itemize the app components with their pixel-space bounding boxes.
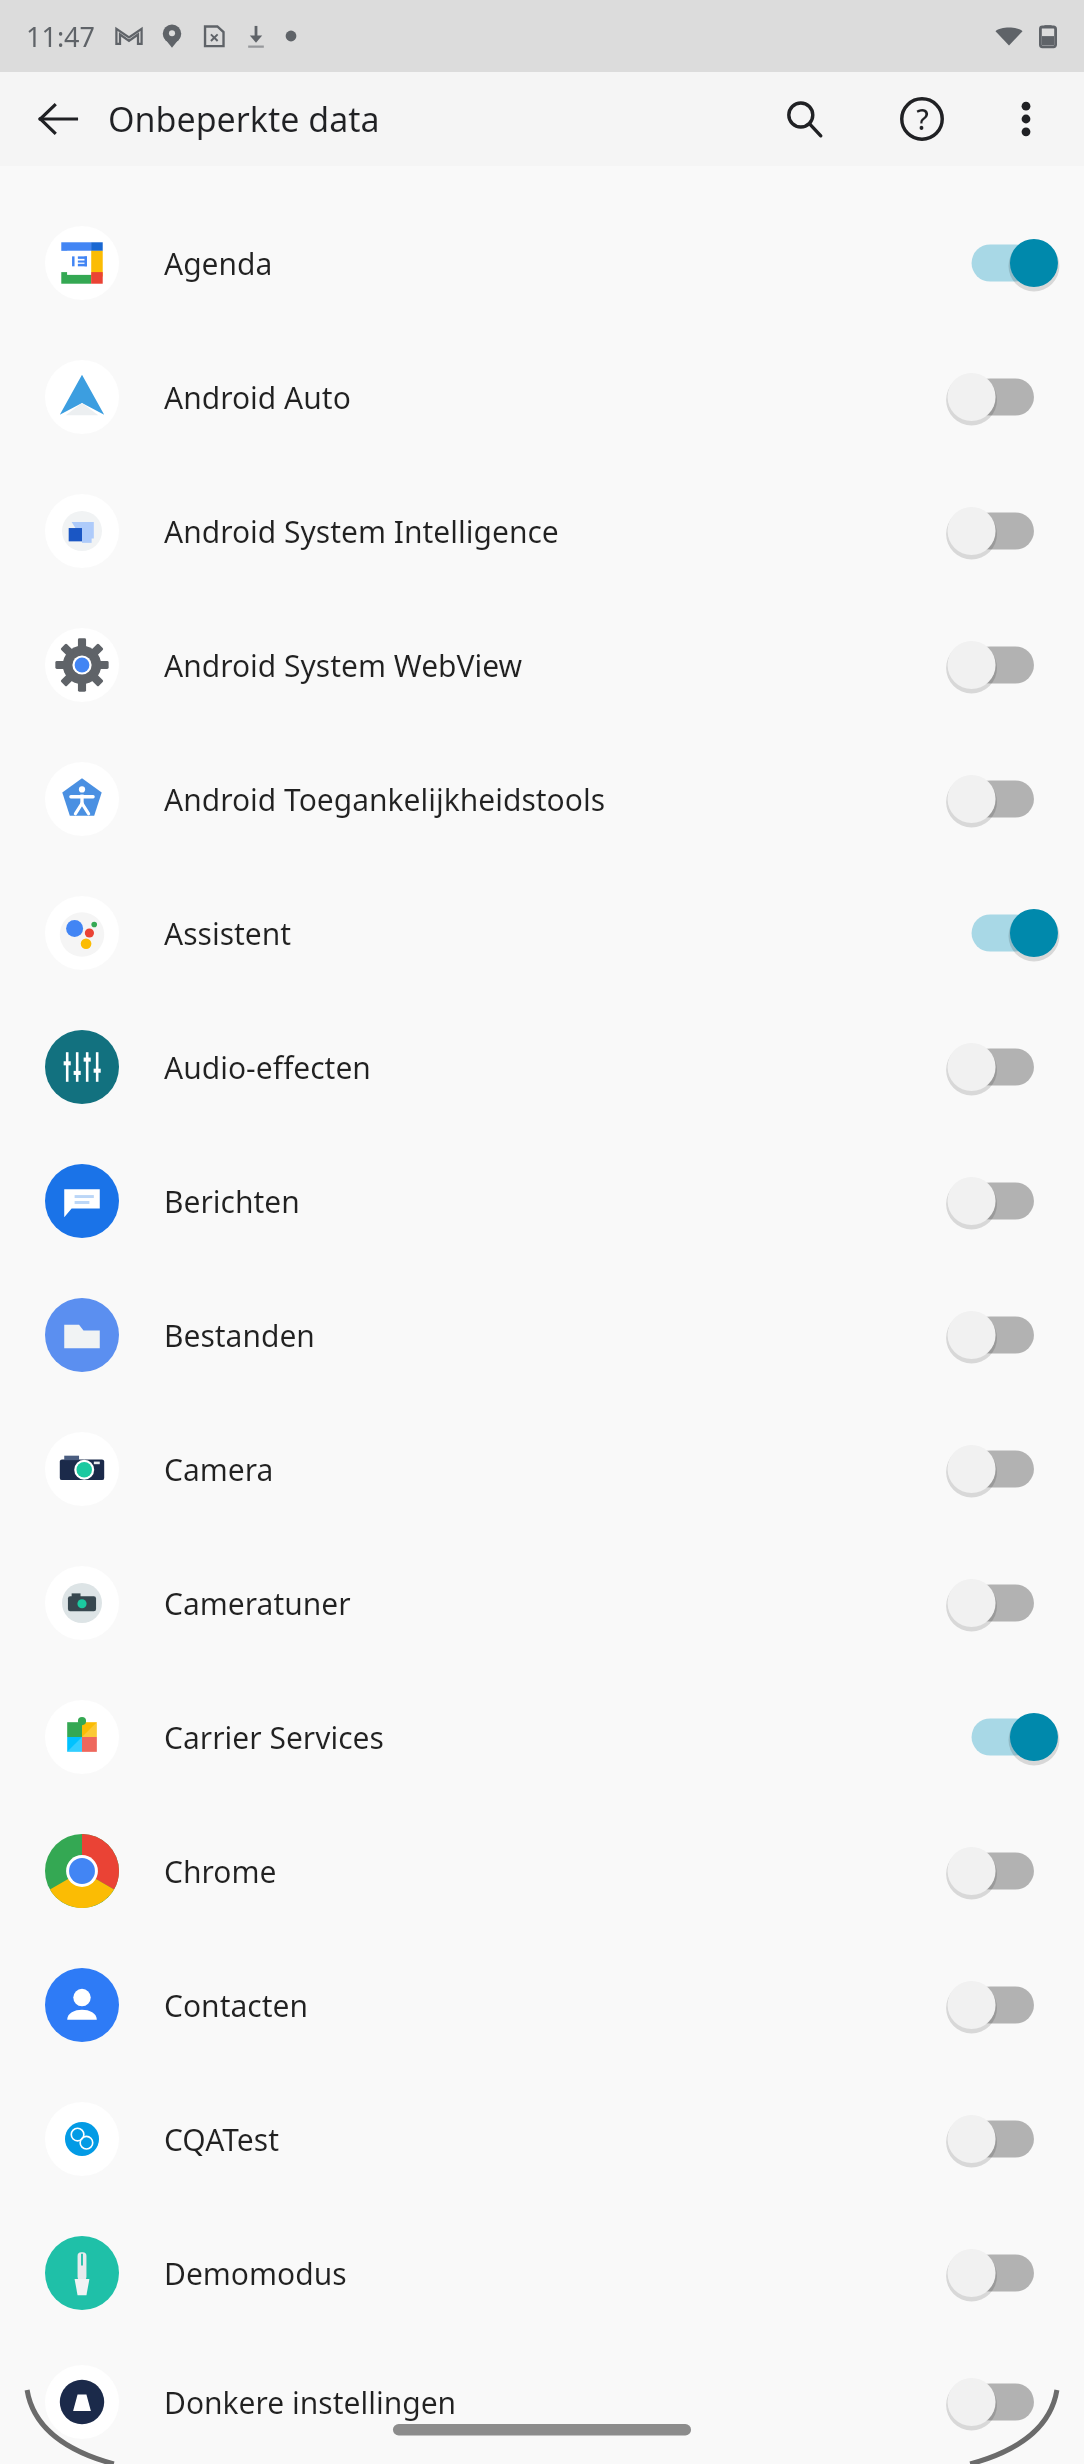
button[interactable]: Assistent [0,866,1084,1000]
button[interactable]: Carrier Services [0,1670,1084,1804]
button[interactable]: Toggle Berichten [934,1134,1084,1268]
button[interactable]: Toggle Android System Intelligence [934,464,1084,598]
button[interactable]: Android System Intelligence [0,464,1084,598]
button[interactable]: Cameratuner [0,1536,1084,1670]
staticText: Android System Intelligence [164,511,559,552]
button[interactable]: Toggle Chrome [934,1804,1084,1938]
staticText: CQATest [164,2119,279,2160]
button[interactable]: Contacten [0,1938,1084,2072]
staticText: Onbeperkte data [108,96,380,142]
button[interactable]: Audio-effecten [0,1000,1084,1134]
button[interactable]: Toggle Android Toegankelijkheidstools [934,732,1084,866]
button[interactable]: More options [986,79,1066,159]
button[interactable]: Android Auto [0,330,1084,464]
button[interactable]: Agenda [0,196,1084,330]
staticText: Chrome [164,1851,277,1892]
staticText: Berichten [164,1181,300,1222]
staticText: Bestanden [164,1315,315,1356]
button[interactable]: Android System WebView [0,598,1084,732]
button[interactable]: Donkere instellingen [0,2340,1084,2464]
button[interactable]: Help [882,79,962,159]
button[interactable]: Search [764,79,844,159]
button[interactable]: CQATest [0,2072,1084,2206]
button[interactable]: Back [22,83,94,155]
button[interactable]: Berichten [0,1134,1084,1268]
button[interactable]: Toggle CQATest [934,2072,1084,2206]
button[interactable]: Toggle Audio-effecten [934,1000,1084,1134]
button[interactable]: Toggle Assistent [934,866,1084,1000]
staticText: Audio-effecten [164,1047,371,1088]
staticText: Contacten [164,1985,308,2026]
button[interactable]: Toggle Agenda [934,196,1084,330]
staticText: ? [916,100,929,138]
button[interactable]: Toggle Donkere instellingen [934,2340,1084,2464]
staticText: Android Toegankelijkheidstools [164,779,605,820]
button[interactable]: Demomodus [0,2206,1084,2340]
staticText: Carrier Services [164,1717,384,1758]
button[interactable]: Toggle Android System WebView [934,598,1084,732]
staticText: Agenda [164,243,273,284]
staticText: 11:47 [26,18,96,55]
button[interactable]: Toggle Android Auto [934,330,1084,464]
button[interactable]: Toggle Demomodus [934,2206,1084,2340]
button[interactable]: Chrome [0,1804,1084,1938]
staticText: Demomodus [164,2253,347,2294]
button[interactable]: Android Toegankelijkheidstools [0,732,1084,866]
button[interactable]: Toggle Camera [934,1402,1084,1536]
staticText: Android System WebView [164,645,523,686]
button[interactable]: Toggle Cameratuner [934,1536,1084,1670]
button[interactable]: Toggle Bestanden [934,1268,1084,1402]
staticText: Camera [164,1449,274,1490]
staticText: Android Auto [164,377,351,418]
button[interactable]: Toggle Contacten [934,1938,1084,2072]
staticText: Donkere instellingen [164,2382,457,2423]
button[interactable]: Camera [0,1402,1084,1536]
staticText: Cameratuner [164,1583,351,1624]
button[interactable]: Toggle Carrier Services [934,1670,1084,1804]
button[interactable]: Bestanden [0,1268,1084,1402]
staticText: Assistent [164,913,292,954]
